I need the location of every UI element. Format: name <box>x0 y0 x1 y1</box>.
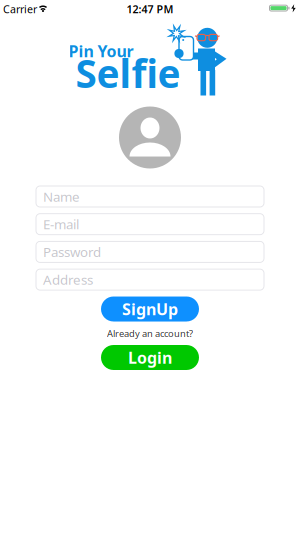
staticText: E-mail <box>43 215 79 233</box>
staticText: Already an account? <box>107 327 193 340</box>
button[interactable]: Name <box>36 186 264 207</box>
staticText: Carrier <box>3 2 37 16</box>
staticText: 12:47 PM <box>126 2 173 16</box>
staticText: Password <box>43 243 101 261</box>
staticText: SignUp <box>122 298 178 320</box>
staticText: Selfie <box>75 47 180 99</box>
staticText: Address <box>43 271 93 288</box>
button[interactable]: Password <box>36 241 264 262</box>
staticText: Name <box>43 188 80 205</box>
button[interactable]: Address <box>36 269 264 290</box>
staticText: Pin Your <box>68 40 133 62</box>
button[interactable]: Login <box>101 345 199 370</box>
button[interactable]: SignUp <box>101 296 199 321</box>
button[interactable]: E-mail <box>36 214 264 235</box>
staticText: Login <box>128 347 172 368</box>
